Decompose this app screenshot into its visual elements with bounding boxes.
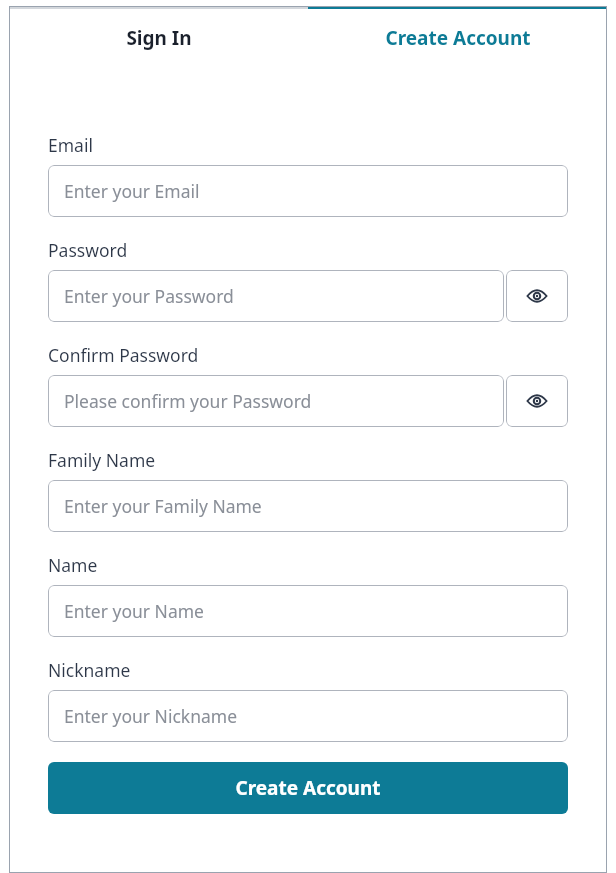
button[interactable]: Enter your Name bbox=[48, 585, 568, 637]
button[interactable]: Enter your Email bbox=[48, 165, 568, 217]
staticText: Enter your Nickname bbox=[64, 704, 238, 728]
button[interactable]: Create Account bbox=[308, 9, 607, 67]
staticText: Enter your Password bbox=[64, 284, 234, 308]
button[interactable]: Sign In bbox=[9, 9, 308, 67]
button[interactable]: Create Account bbox=[48, 762, 568, 814]
staticText: Enter your Email bbox=[64, 179, 200, 203]
staticText: Nickname bbox=[48, 658, 131, 682]
staticText: Create Account bbox=[235, 775, 381, 801]
staticText: Name bbox=[48, 553, 98, 577]
button[interactable]: Show password bbox=[506, 270, 568, 322]
staticText: Confirm Password bbox=[48, 343, 199, 367]
staticText: Password bbox=[48, 238, 128, 262]
staticText: Enter your Name bbox=[64, 599, 204, 623]
staticText: Please confirm your Password bbox=[64, 389, 312, 413]
button[interactable]: Enter your Password bbox=[48, 270, 504, 322]
staticText: Email bbox=[48, 133, 93, 157]
button[interactable]: Please confirm your Password bbox=[48, 375, 504, 427]
button[interactable]: Enter your Nickname bbox=[48, 690, 568, 742]
button[interactable]: Enter your Family Name bbox=[48, 480, 568, 532]
staticText: Enter your Family Name bbox=[64, 494, 262, 518]
staticText: Create Account bbox=[385, 25, 531, 51]
staticText: Sign In bbox=[126, 25, 192, 51]
staticText: Family Name bbox=[48, 448, 156, 472]
button[interactable]: Show password bbox=[506, 375, 568, 427]
